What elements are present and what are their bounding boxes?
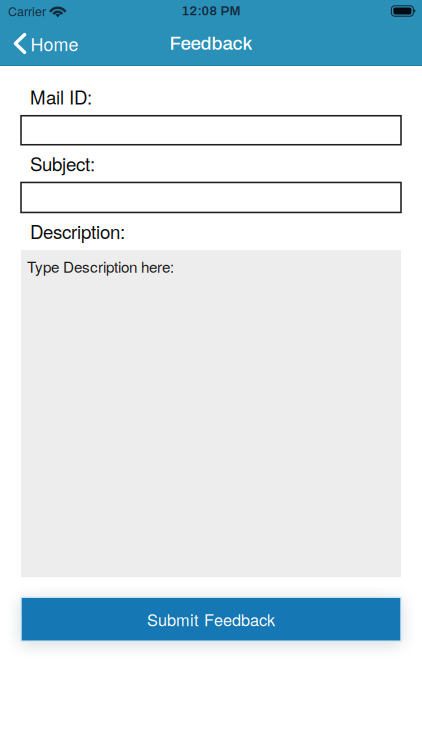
staticText: Carrier (8, 2, 46, 20)
staticText: Description: (30, 217, 125, 244)
staticText: Submit Feedback (147, 607, 275, 631)
staticText: Mail ID: (30, 83, 92, 110)
staticText: Type Description here: (27, 255, 174, 277)
staticText: Subject: (30, 150, 95, 176)
staticText: 12:08 PM (181, 4, 240, 18)
staticText: Feedback (169, 33, 252, 54)
staticText: Home (30, 31, 78, 56)
button[interactable]: Submit Feedback (21, 597, 401, 641)
button[interactable]: Home (0, 21, 88, 65)
